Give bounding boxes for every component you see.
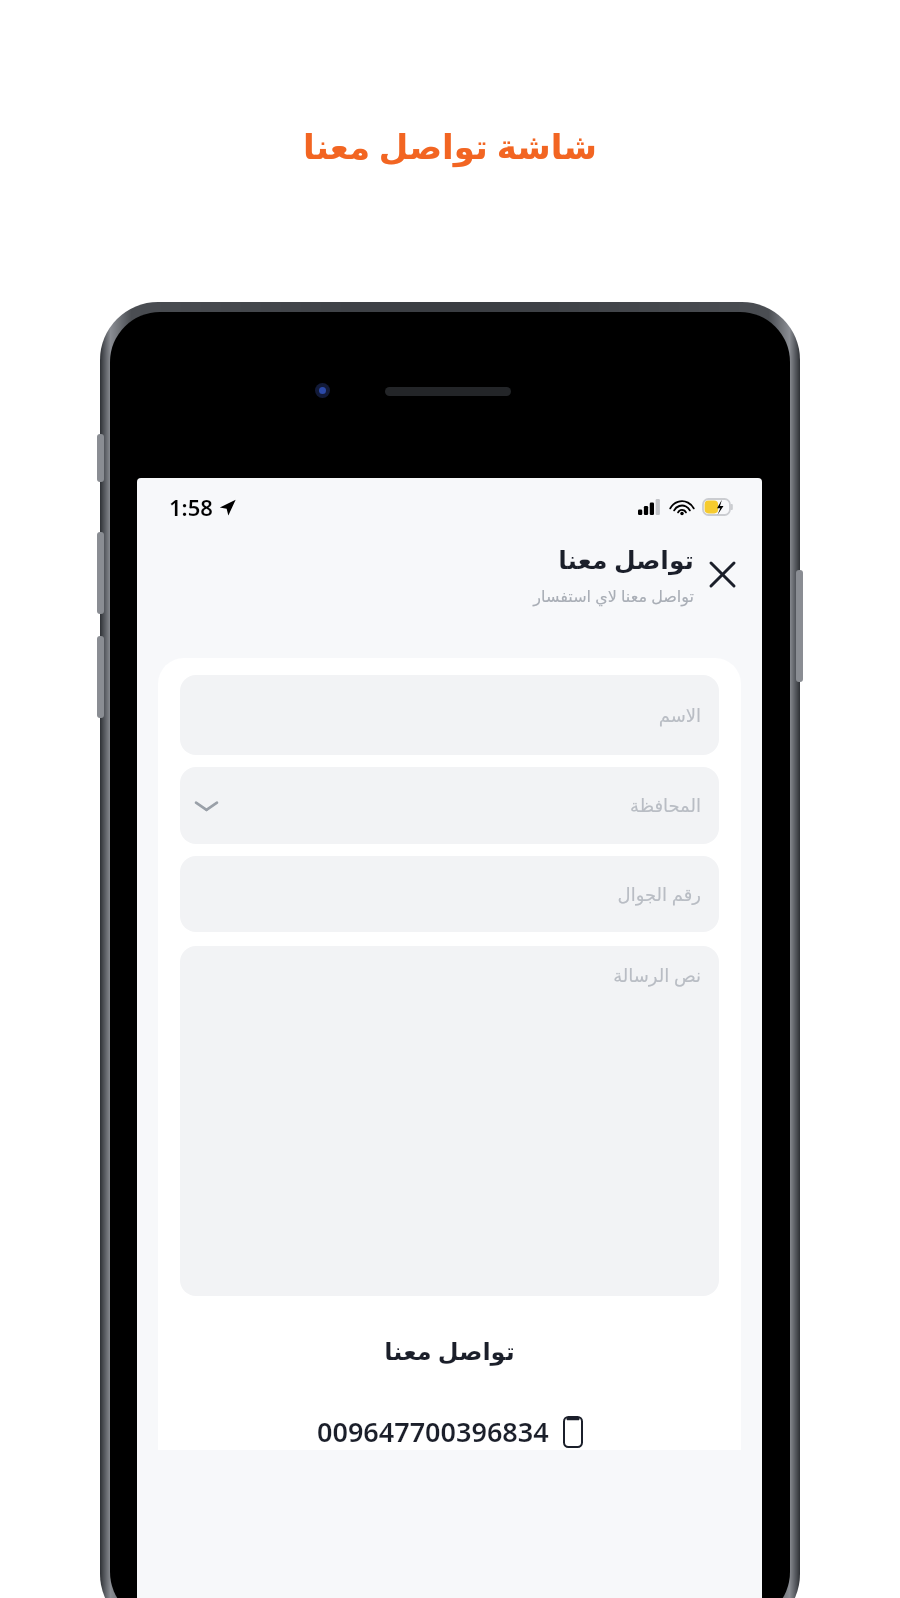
staticText: 009647700396834: [317, 1413, 549, 1450]
staticText: تواصل معنا: [180, 1334, 719, 1367]
button[interactable]: 009647700396834: [180, 1413, 719, 1450]
staticText: المحافظة: [629, 795, 701, 816]
staticText: رقم الجوال: [617, 882, 701, 907]
staticText: 1:58: [169, 492, 213, 522]
button[interactable]: إغلاق: [694, 546, 750, 602]
staticText: نص الرسالة: [613, 963, 701, 988]
staticText: تواصل معنا لاي استفسار: [533, 585, 694, 607]
staticText: تواصل معنا: [558, 542, 694, 576]
staticText: الاسم: [658, 705, 701, 726]
button[interactable]: الاسم: [180, 675, 719, 755]
staticText: شاشة تواصل معنا: [0, 123, 900, 169]
button[interactable]: رقم الجوال: [180, 856, 719, 932]
button[interactable]: المحافظة: [180, 767, 719, 844]
